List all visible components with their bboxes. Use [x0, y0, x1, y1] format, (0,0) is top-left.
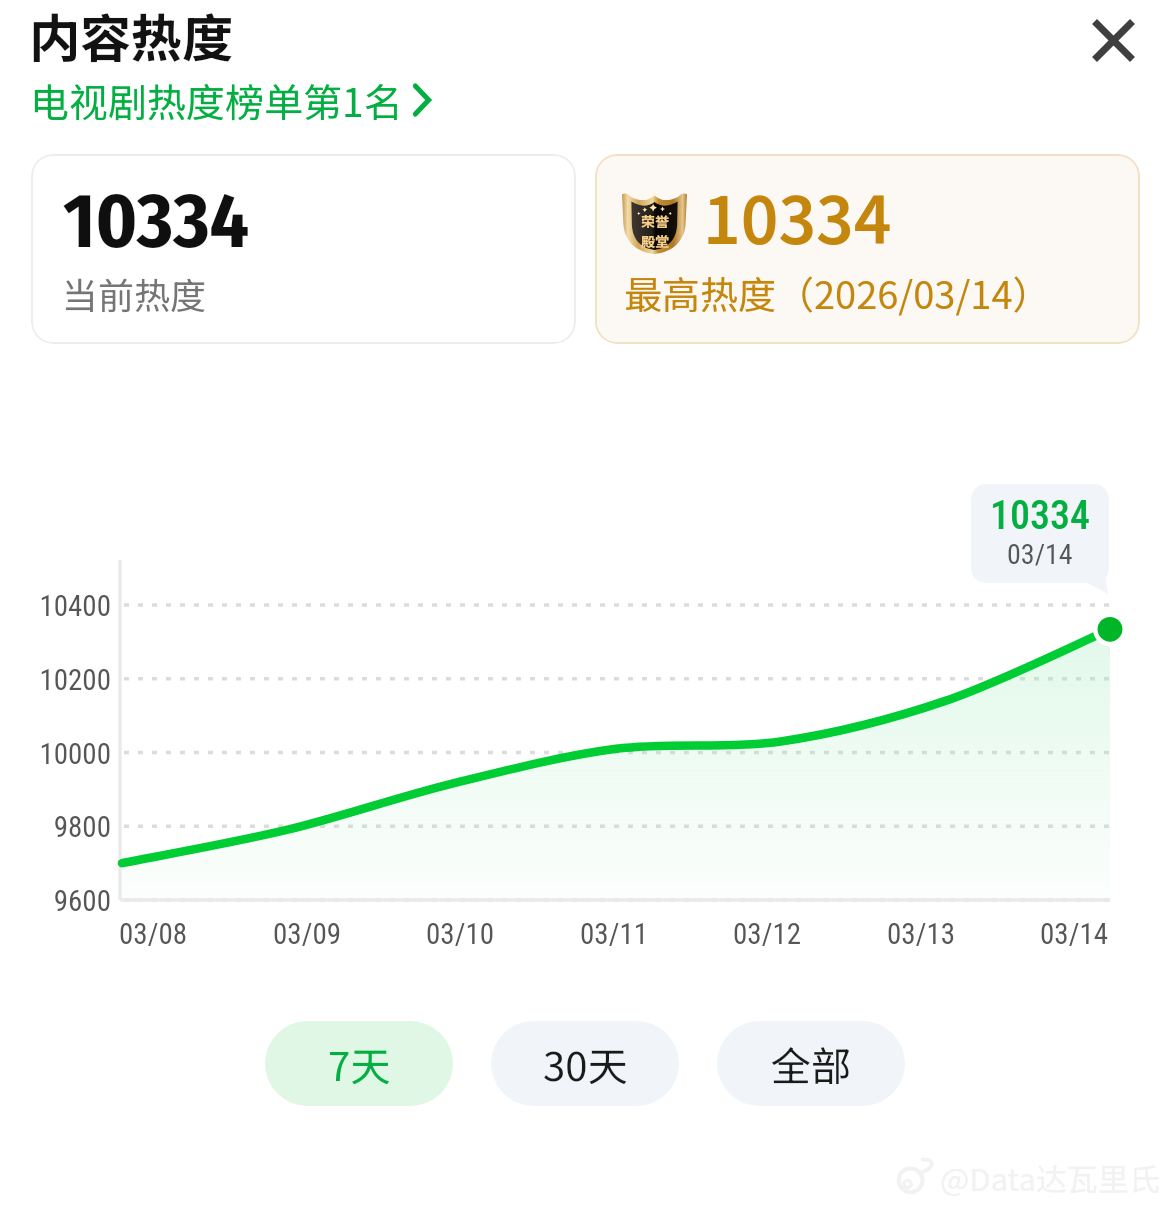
- button[interactable]: 荣誉: [595, 154, 1140, 344]
- staticText: @Data达瓦里氏: [940, 1155, 1160, 1200]
- staticText: 03/10: [426, 917, 495, 951]
- staticText: 荣誉: [641, 211, 669, 231]
- staticText: 9600: [3, 884, 111, 918]
- staticText: 10200: [3, 663, 111, 697]
- button[interactable]: 7天: [265, 1021, 453, 1106]
- staticText: 当前热度: [62, 267, 207, 319]
- button[interactable]: 电视剧热度榜单第1名: [26, 69, 435, 131]
- staticText: 03/12: [733, 917, 802, 951]
- staticText: 03/11: [580, 917, 649, 951]
- staticText: 10400: [3, 589, 111, 623]
- staticText: 30天: [543, 1035, 628, 1093]
- staticText: 10000: [3, 737, 111, 771]
- staticText: 03/09: [273, 917, 342, 951]
- staticText: 03/14: [1007, 538, 1073, 571]
- button[interactable]: Close: [1074, 2, 1152, 78]
- staticText: 03/08: [119, 917, 188, 951]
- staticText: 03/13: [887, 917, 956, 951]
- staticText: 7天: [328, 1035, 391, 1093]
- staticText: 9800: [3, 810, 111, 844]
- button[interactable]: 全部: [717, 1021, 905, 1106]
- staticText: 殿堂: [641, 231, 669, 251]
- staticText: 电视剧热度榜单第1名: [30, 72, 403, 128]
- staticText: 03/14: [1040, 917, 1109, 951]
- staticText: 10334: [703, 169, 892, 263]
- staticText: 10334: [63, 175, 250, 267]
- staticText: 最高热度（2026/03/14）: [624, 265, 1051, 320]
- staticText: 全部: [771, 1035, 851, 1093]
- staticText: 10334: [990, 492, 1090, 539]
- staticText: 内容热度: [29, 0, 234, 72]
- button[interactable]: 10334: [31, 154, 576, 344]
- button[interactable]: 30天: [491, 1021, 679, 1106]
